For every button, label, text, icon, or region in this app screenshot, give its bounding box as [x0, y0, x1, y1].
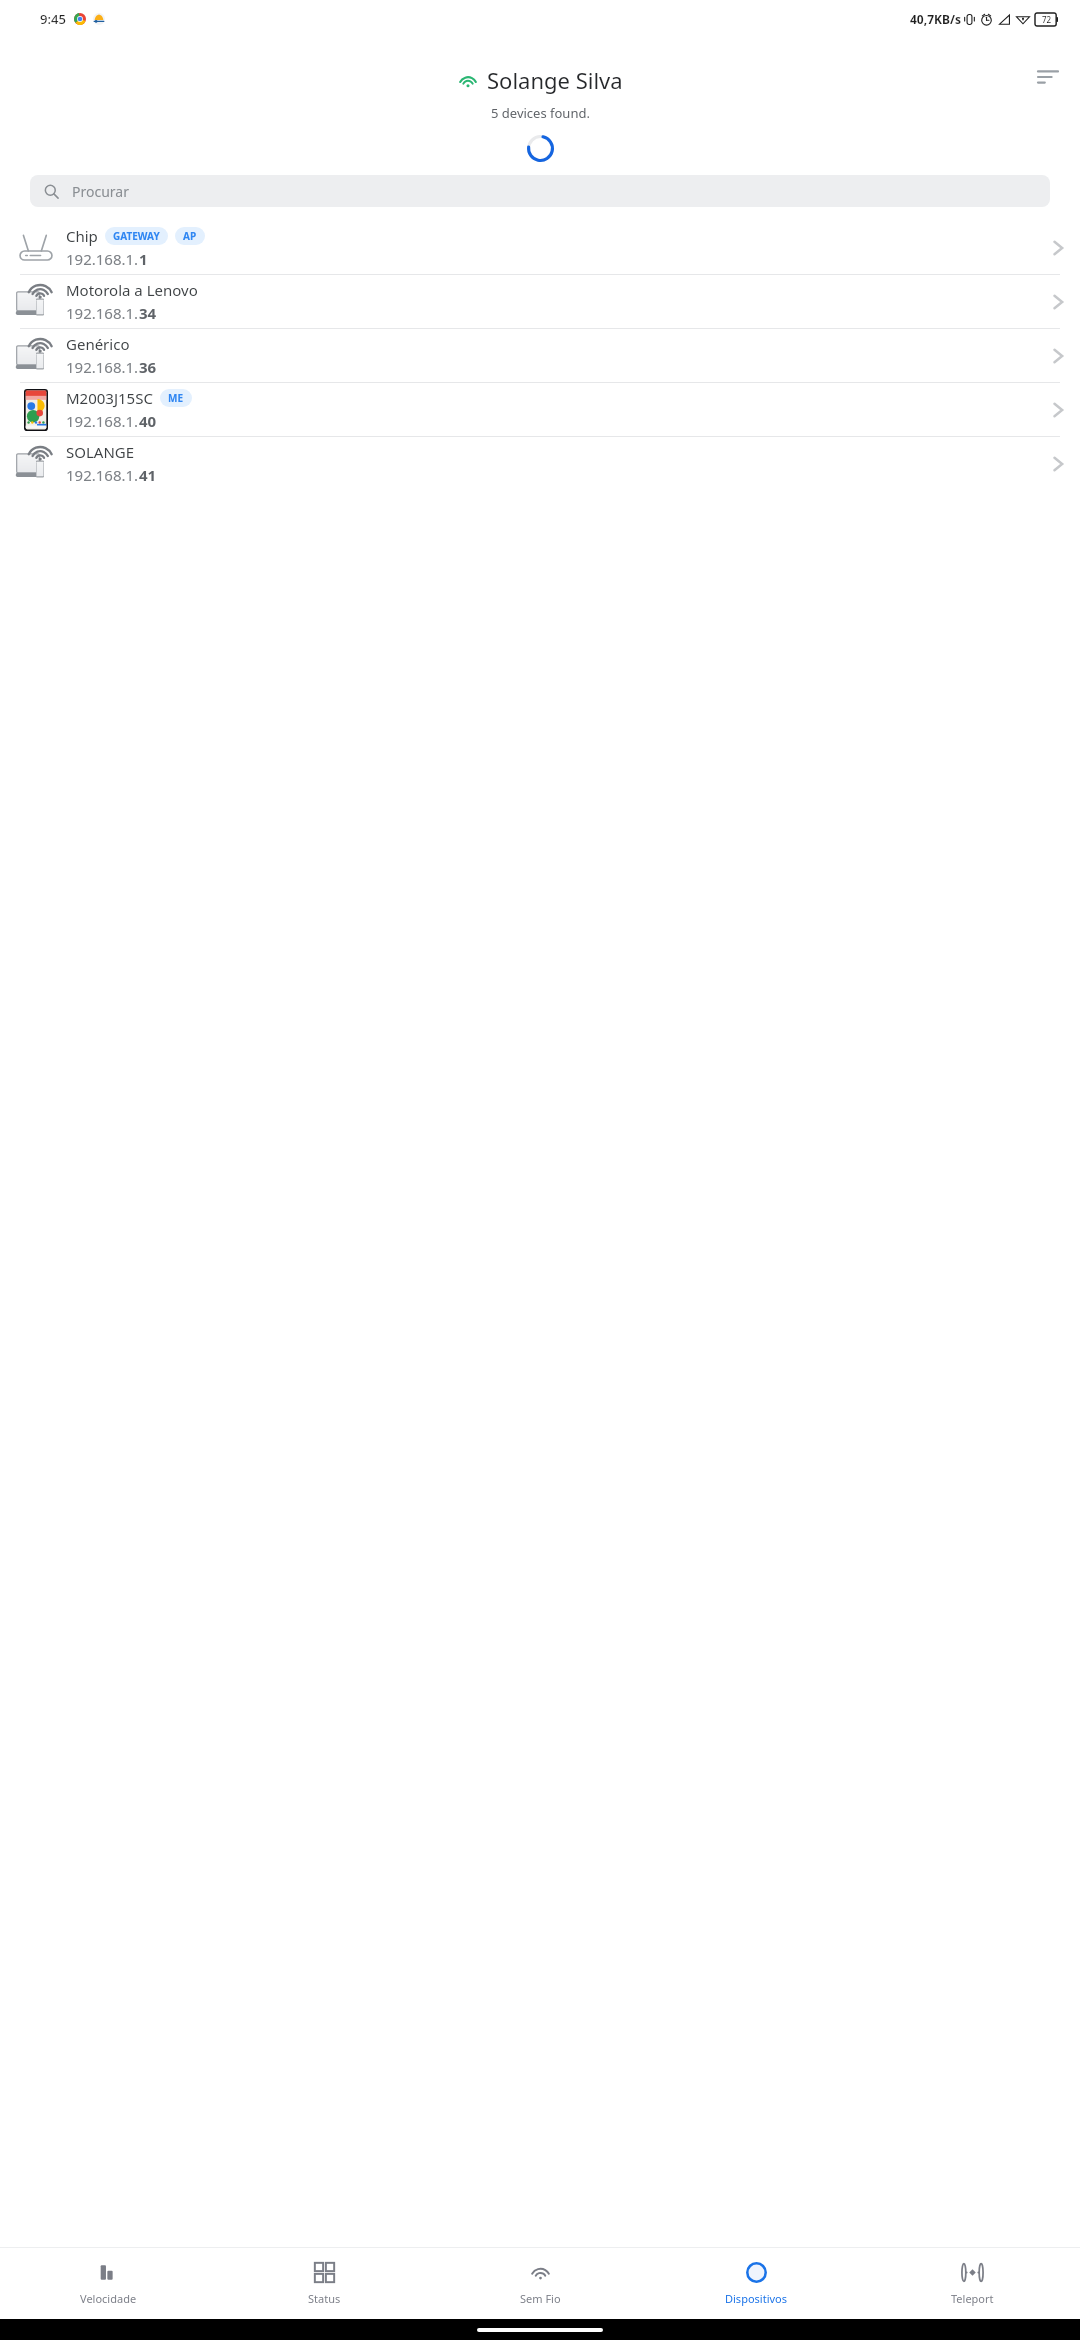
- staticText: Genérico: [66, 334, 130, 354]
- button[interactable]: Status: [216, 2247, 432, 2319]
- staticText: 36: [139, 357, 157, 377]
- staticText: Solange Silva: [487, 65, 623, 95]
- staticText: 40: [139, 411, 157, 431]
- staticText: Dispositivos: [725, 2291, 787, 2306]
- staticText: Velocidade: [80, 2291, 137, 2306]
- staticText: 5 devices found.: [491, 104, 590, 122]
- staticText: Motorola a Lenovo: [66, 280, 198, 300]
- button[interactable]: Procurar: [30, 175, 1050, 207]
- button[interactable]: Motorola a Lenovo: [0, 275, 1080, 328]
- staticText: AP: [183, 229, 197, 243]
- staticText: 40,7KB/s: [910, 11, 961, 27]
- staticText: 192.168.1.: [66, 411, 139, 431]
- staticText: 72: [1042, 14, 1052, 25]
- staticText: 192.168.1.: [66, 465, 139, 485]
- button[interactable]: Chip: [0, 221, 1080, 274]
- button[interactable]: SOLANGE: [0, 437, 1080, 490]
- staticText: 9:45: [40, 10, 66, 28]
- staticText: 192.168.1.: [66, 303, 139, 323]
- staticText: Teleport: [951, 2291, 994, 2306]
- staticText: M2003J15SC: [66, 388, 153, 408]
- staticText: 192.168.1.: [66, 357, 139, 377]
- button[interactable]: M2003J15SC: [0, 383, 1080, 436]
- button[interactable]: Genérico: [0, 329, 1080, 382]
- staticText: GATEWAY: [113, 229, 160, 243]
- button[interactable]: Velocidade: [0, 2247, 216, 2319]
- staticText: Procurar: [72, 182, 129, 201]
- staticText: 41: [139, 465, 157, 485]
- staticText: SOLANGE: [66, 442, 135, 462]
- button[interactable]: Sort devices: [1026, 55, 1070, 99]
- staticText: 1: [139, 249, 148, 269]
- staticText: Chip: [66, 226, 98, 246]
- staticText: ME: [168, 391, 184, 405]
- staticText: Sem Fio: [520, 2291, 561, 2306]
- staticText: 34: [139, 303, 157, 323]
- staticText: 192.168.1.: [66, 249, 139, 269]
- button[interactable]: Teleport: [864, 2247, 1080, 2319]
- button[interactable]: Dispositivos: [648, 2247, 864, 2319]
- button[interactable]: Sem Fio: [432, 2247, 648, 2319]
- staticText: Status: [308, 2291, 341, 2306]
